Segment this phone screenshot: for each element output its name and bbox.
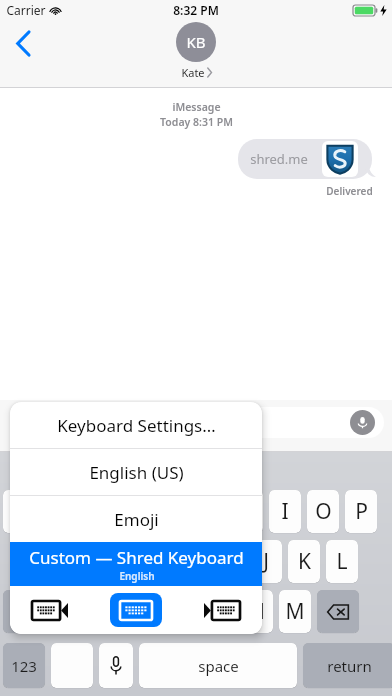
button[interactable]: T [155, 490, 187, 533]
button[interactable]: KB [176, 22, 216, 80]
button[interactable]: Delete [317, 590, 359, 633]
button[interactable]: Next keyboard [51, 643, 93, 688]
button[interactable]: C [127, 590, 159, 633]
button[interactable]: J [250, 540, 282, 583]
button[interactable]: Dictation [99, 643, 133, 688]
button[interactable]: B [203, 590, 235, 633]
staticText: Delivered [326, 184, 373, 198]
staticText: R [126, 497, 140, 526]
button[interactable]: N [241, 590, 273, 633]
button[interactable] [44, 407, 384, 438]
staticText: F [147, 547, 158, 576]
button[interactable]: Back [4, 24, 42, 62]
button[interactable]: return [303, 643, 392, 688]
staticText: 8:32 PM [173, 2, 219, 18]
button[interactable]: F [136, 540, 168, 583]
button[interactable]: Y [193, 490, 225, 533]
staticText: English [119, 569, 155, 583]
staticText: X [99, 597, 112, 626]
staticText: I [281, 497, 289, 526]
button[interactable]: X [89, 590, 121, 633]
button[interactable]: English (US) [10, 449, 262, 495]
button[interactable]: P [345, 490, 377, 533]
button[interactable]: Z [51, 590, 83, 633]
button[interactable]: 123 [3, 643, 45, 688]
staticText: iMessage [172, 100, 221, 114]
button[interactable]: U [231, 490, 263, 533]
button[interactable]: shred.me [238, 139, 372, 179]
staticText: A [31, 547, 45, 576]
staticText: shred.me [250, 150, 308, 168]
staticText: Kate [181, 65, 205, 80]
staticText: H [220, 547, 236, 576]
staticText: Z [61, 597, 74, 626]
button[interactable]: L [326, 540, 358, 583]
button[interactable]: R [117, 490, 149, 533]
button[interactable]: G [174, 540, 206, 583]
button[interactable]: M [279, 590, 311, 633]
staticText: P [355, 497, 368, 526]
staticText: space [198, 656, 239, 676]
button[interactable]: Custom — Shred Keyboard [10, 542, 262, 586]
staticText: M [285, 597, 305, 626]
button[interactable]: Keyboard Settings… [10, 402, 262, 448]
button[interactable]: Emoji [10, 496, 262, 542]
staticText: 123 [11, 656, 37, 676]
staticText: English (US) [89, 461, 184, 484]
button[interactable]: Current keyboard [110, 593, 162, 627]
staticText: S [70, 547, 82, 576]
button[interactable]: E [79, 490, 111, 533]
staticText: C [136, 597, 150, 626]
staticText: L [336, 547, 348, 576]
staticText: Emoji [114, 508, 159, 531]
staticText: K [298, 547, 311, 576]
button[interactable]: Dictate [350, 410, 375, 435]
staticText: D [106, 547, 122, 576]
staticText: Custom — Shred Keyboard [29, 546, 244, 569]
button[interactable]: space [139, 643, 297, 688]
button[interactable]: I [269, 490, 301, 533]
button[interactable]: W [41, 490, 73, 533]
staticText: N [249, 597, 265, 626]
staticText: O [315, 497, 332, 526]
staticText: B [212, 597, 226, 626]
button[interactable]: H [212, 540, 244, 583]
staticText: Keyboard Settings… [57, 414, 216, 437]
staticText: G [182, 547, 198, 576]
staticText: return [327, 656, 372, 676]
button[interactable]: S [60, 540, 92, 583]
staticText: Today 8:31 PM [160, 115, 233, 129]
button[interactable]: A [22, 540, 54, 583]
staticText: Carrier [6, 2, 46, 18]
button[interactable]: D [98, 540, 130, 583]
button[interactable]: O [307, 490, 339, 533]
button[interactable]: Q [3, 490, 35, 533]
button[interactable]: Shift [3, 590, 45, 633]
button[interactable]: Previous keyboard [24, 593, 76, 627]
staticText: KB [186, 32, 206, 52]
button[interactable]: Next keyboard [196, 593, 248, 627]
button[interactable]: K [288, 540, 320, 583]
staticText: J [263, 547, 269, 576]
button[interactable]: Shred app icon [322, 141, 358, 177]
